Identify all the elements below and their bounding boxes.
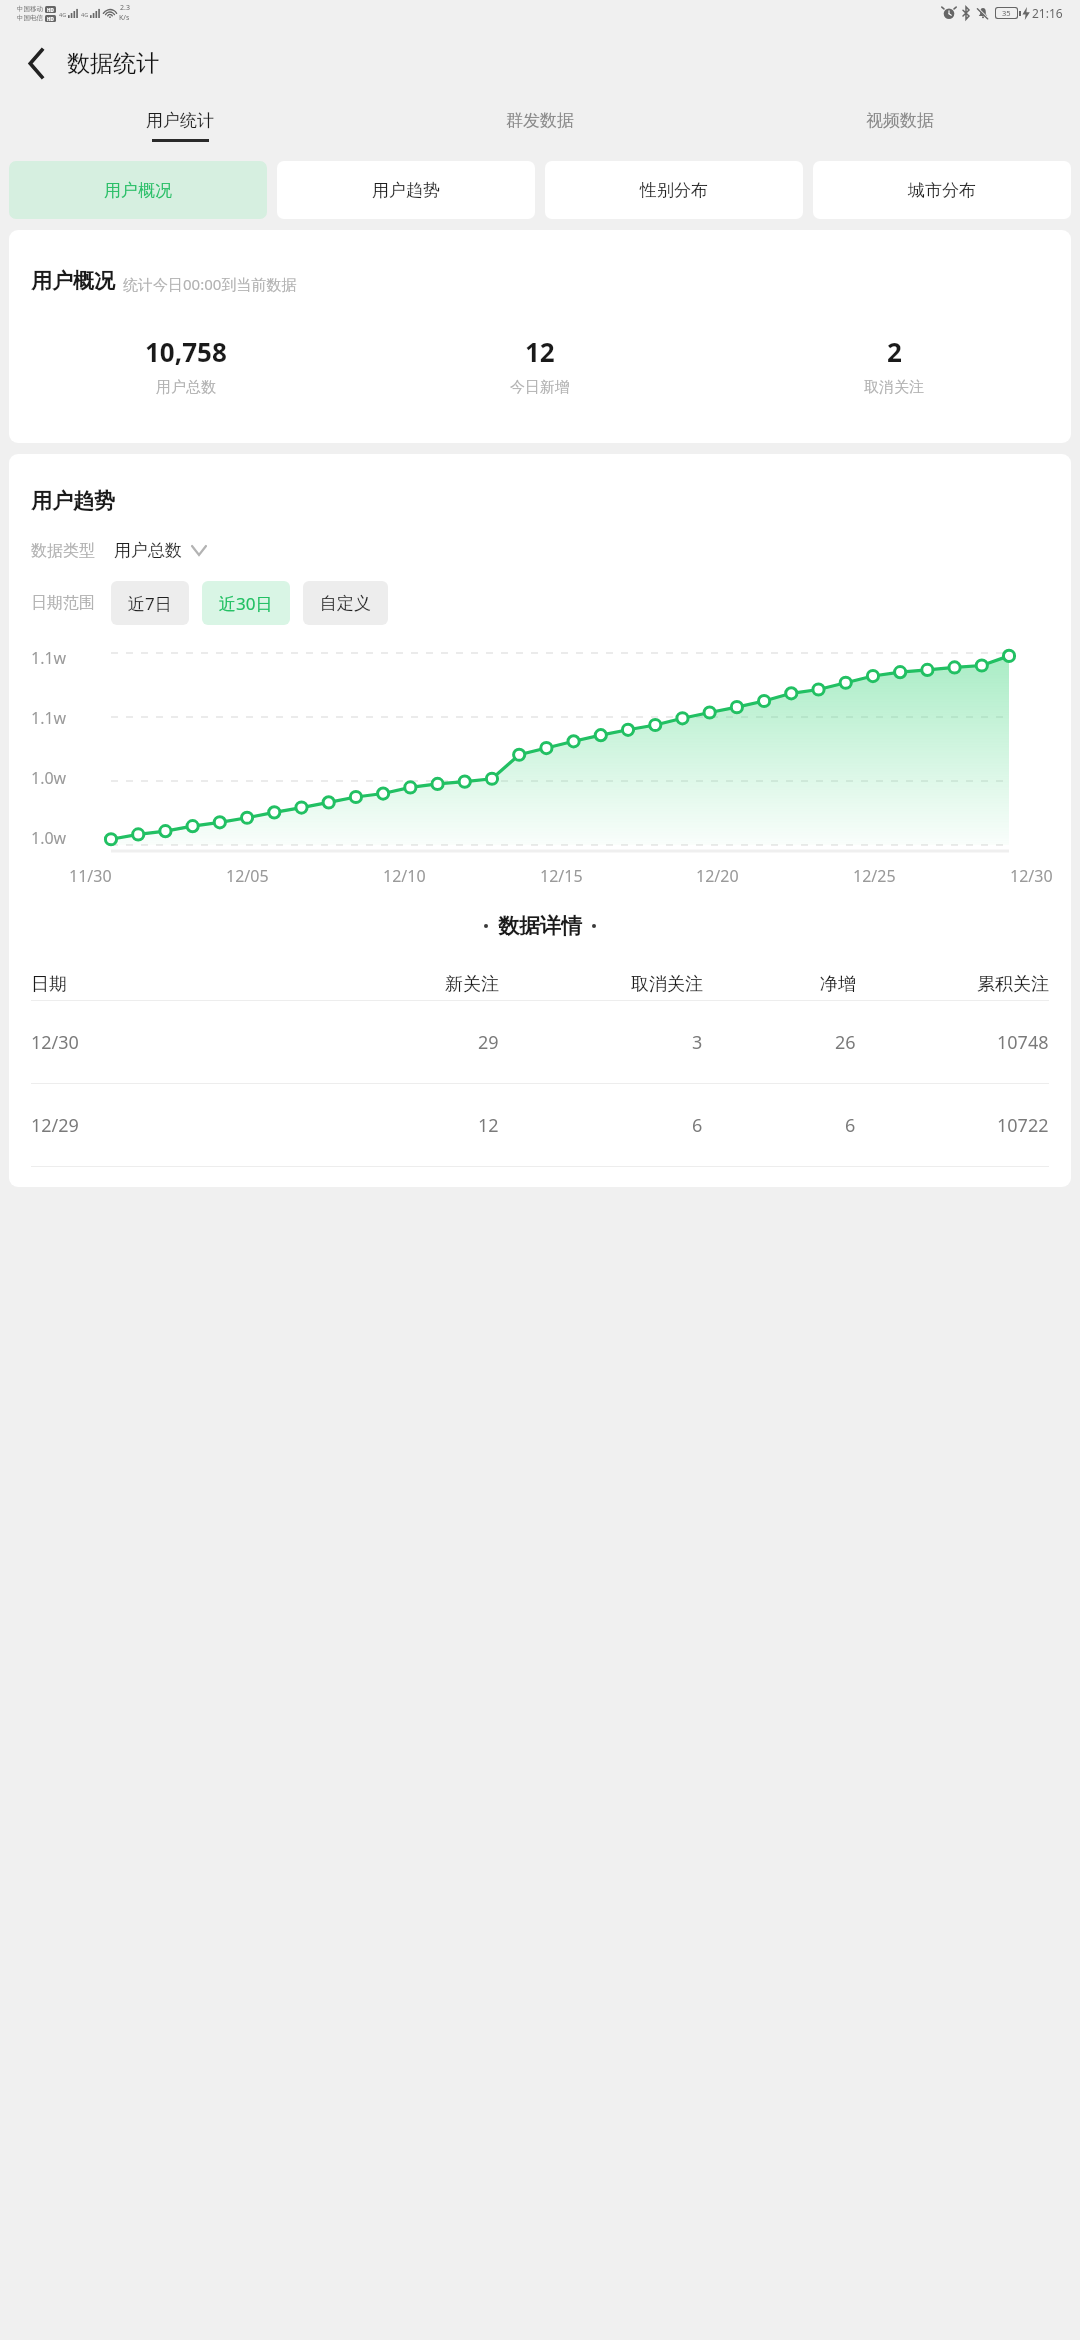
button[interactable]: 近7日 <box>111 581 189 625</box>
staticText: 11/30 <box>69 865 112 887</box>
staticText: 数据类型 <box>31 541 95 561</box>
staticText: 用户总数 <box>114 540 182 561</box>
staticText: 21:16 <box>1032 5 1063 21</box>
button[interactable]: 近30日 <box>202 581 290 625</box>
staticText: 2 <box>887 334 902 369</box>
staticText: 用户统计 <box>146 110 214 131</box>
staticText: 10,758 <box>145 334 227 369</box>
button[interactable]: 用户趋势 <box>277 161 535 219</box>
staticText: K/s <box>119 13 130 23</box>
staticText: 2.3 <box>120 3 130 13</box>
staticText: 用户总数 <box>156 378 216 397</box>
staticText: 用户概况 <box>104 180 172 201</box>
staticText: 1.0w <box>31 767 67 789</box>
staticText: 12/10 <box>383 865 426 887</box>
staticText: 统计今日00:00到当前数据 <box>123 274 297 294</box>
staticText: 取消关注 <box>864 378 924 397</box>
button[interactable]: 视频数据 <box>720 100 1080 152</box>
staticText: 12 <box>478 1113 499 1138</box>
staticText: 6 <box>845 1113 856 1138</box>
button[interactable]: 性别分布 <box>545 161 803 219</box>
staticText: 取消关注 <box>631 973 703 996</box>
staticText: 自定义 <box>320 593 371 614</box>
staticText: 城市分布 <box>908 180 976 201</box>
staticText: 1.0w <box>31 827 67 849</box>
staticText: HD <box>47 7 54 13</box>
staticText: 12/25 <box>853 865 896 887</box>
button[interactable]: 数据类型 <box>31 540 206 561</box>
button[interactable]: 用户统计 <box>0 100 360 152</box>
staticText: 6 <box>692 1113 703 1138</box>
button[interactable]: 群发数据 <box>360 100 720 152</box>
staticText: 10722 <box>997 1113 1049 1138</box>
staticText: 用户趋势 <box>372 180 440 201</box>
staticText: 3 <box>692 1030 703 1055</box>
staticText: 日期范围 <box>31 593 95 613</box>
staticText: 近7日 <box>128 592 172 615</box>
staticText: 近30日 <box>219 592 273 615</box>
button[interactable]: 用户概况 <box>9 161 267 219</box>
staticText: 26 <box>835 1030 856 1055</box>
staticText: 12/20 <box>696 865 739 887</box>
staticText: 1.1w <box>31 647 67 669</box>
staticText: HD <box>47 16 54 22</box>
other: Alarm <box>942 6 956 20</box>
staticText: 4G <box>81 11 89 18</box>
staticText: 中国电信 <box>17 14 43 22</box>
staticText: 中国移动 <box>17 5 43 13</box>
staticText: 数据统计 <box>67 49 159 78</box>
staticText: 12/30 <box>1010 865 1053 887</box>
staticText: 35 <box>1002 8 1011 18</box>
staticText: 群发数据 <box>506 110 574 131</box>
staticText: 29 <box>478 1030 499 1055</box>
staticText: 用户概况 <box>31 268 115 294</box>
staticText: 12/29 <box>31 1113 79 1138</box>
staticText: 日期 <box>31 973 67 996</box>
staticText: 4G <box>59 11 67 18</box>
staticText: 视频数据 <box>866 110 934 131</box>
staticText: 12/15 <box>540 865 583 887</box>
button[interactable]: 城市分布 <box>813 161 1071 219</box>
staticText: 10748 <box>997 1030 1049 1055</box>
button[interactable]: 自定义 <box>303 581 388 625</box>
staticText: 12 <box>525 334 555 369</box>
staticText: 净增 <box>820 973 856 996</box>
staticText: 累积关注 <box>977 973 1049 996</box>
staticText: 1.1w <box>31 707 67 729</box>
staticText: 今日新增 <box>510 378 570 397</box>
button[interactable]: Back <box>14 41 58 85</box>
staticText: 12/05 <box>226 865 269 887</box>
staticText: 用户趋势 <box>31 488 115 514</box>
staticText: 数据详情 <box>498 913 582 939</box>
staticText: 性别分布 <box>640 180 708 201</box>
staticText: 12/30 <box>31 1030 79 1055</box>
staticText: 新关注 <box>445 973 499 996</box>
